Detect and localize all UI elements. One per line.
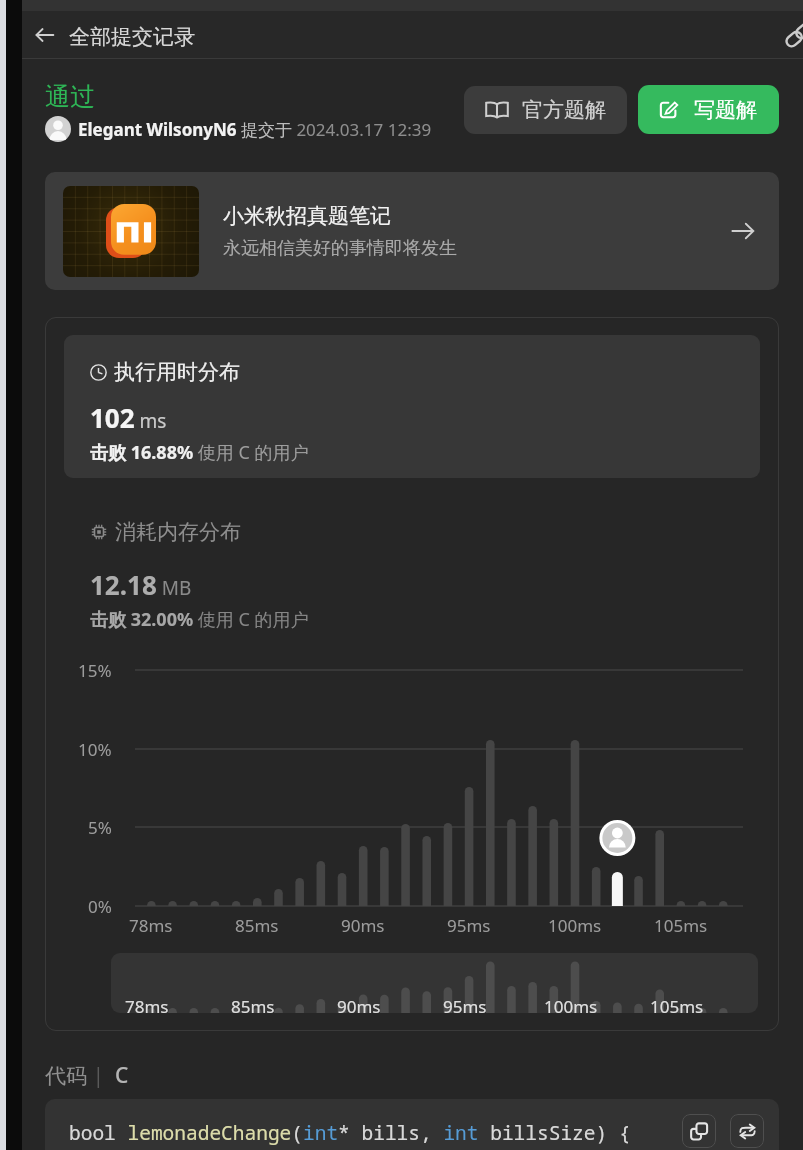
staticText: 10% [78, 738, 112, 760]
staticText: 消耗内存分布 [115, 519, 241, 545]
staticText: 78ms [125, 995, 169, 1013]
staticText: 小米秋招真题笔记 [223, 203, 391, 229]
staticText: 12.18 MB [90, 567, 192, 602]
staticText: 写题解 [694, 97, 757, 123]
button[interactable]: 官方题解 [464, 86, 627, 134]
staticText: 0% [88, 895, 112, 917]
staticText: 击败 16.88% 使用 C 的用户 [90, 440, 309, 465]
staticText: bool lemonadeChange(int* bills, int bill… [69, 1119, 631, 1146]
button[interactable]: 小米秋招真题笔记 [45, 172, 779, 290]
button[interactable]: Back [25, 15, 65, 55]
staticText: 5% [88, 816, 112, 838]
staticText: 通过 [45, 81, 95, 112]
staticText: 90ms [341, 914, 385, 937]
staticText: 15% [78, 659, 112, 681]
staticText: 85ms [231, 995, 275, 1013]
button[interactable]: 写题解 [638, 85, 779, 134]
staticText: 102 ms [90, 400, 167, 435]
staticText: 代码 | C [45, 1061, 129, 1090]
staticText: 105ms [654, 914, 708, 937]
staticText: 击败 32.00% 使用 C 的用户 [90, 607, 309, 632]
staticText: 全部提交记录 [69, 24, 195, 50]
staticText: 90ms [337, 995, 381, 1013]
staticText: 95ms [443, 995, 487, 1013]
staticText: 95ms [447, 914, 491, 937]
staticText: 永远相信美好的事情即将发生 [223, 237, 457, 260]
staticText: 85ms [235, 914, 279, 937]
staticText: 105ms [650, 995, 704, 1013]
button[interactable]: Copy link [778, 14, 803, 56]
staticText: 78ms [129, 914, 173, 937]
button[interactable]: Copy code [682, 1114, 716, 1148]
staticText: Elegant WilsonyN6 提交于 2024.03.17 12:39 [78, 118, 432, 141]
staticText: 官方题解 [522, 97, 606, 123]
button[interactable]: Toggle diff [730, 1114, 764, 1148]
staticText: 100ms [548, 914, 602, 937]
staticText: 100ms [544, 995, 598, 1013]
staticText: 执行用时分布 [114, 359, 240, 385]
